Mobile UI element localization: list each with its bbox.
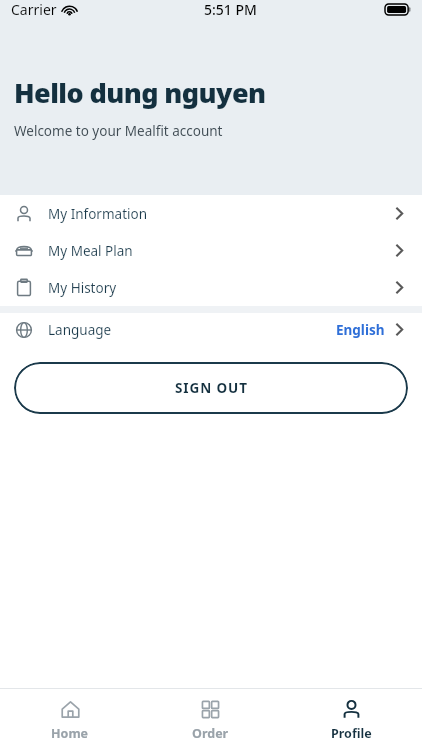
staticText: Language bbox=[48, 321, 112, 339]
staticText: Home bbox=[51, 725, 89, 742]
button[interactable]: Home bbox=[0, 692, 140, 748]
staticText: Profile bbox=[331, 725, 372, 742]
staticText: Carrier bbox=[11, 0, 57, 19]
button[interactable]: My Information bbox=[0, 195, 422, 232]
staticText: SIGN OUT bbox=[175, 379, 248, 397]
staticText: My Meal Plan bbox=[48, 242, 133, 260]
button[interactable]: SIGN OUT bbox=[14, 362, 408, 414]
staticText: My Information bbox=[48, 205, 148, 223]
staticText: My History bbox=[48, 279, 117, 297]
button[interactable]: Language bbox=[0, 313, 422, 346]
button[interactable]: Profile bbox=[281, 692, 422, 748]
staticText: 5:51 PM bbox=[204, 0, 257, 19]
button[interactable]: Order bbox=[140, 692, 281, 748]
button[interactable]: My History bbox=[0, 269, 422, 306]
button[interactable]: My Meal Plan bbox=[0, 232, 422, 269]
staticText: Welcome to your Mealfit account bbox=[14, 122, 223, 140]
staticText: English bbox=[336, 321, 385, 339]
staticText: Hello dung nguyen bbox=[14, 74, 266, 111]
staticText: Order bbox=[192, 725, 229, 742]
